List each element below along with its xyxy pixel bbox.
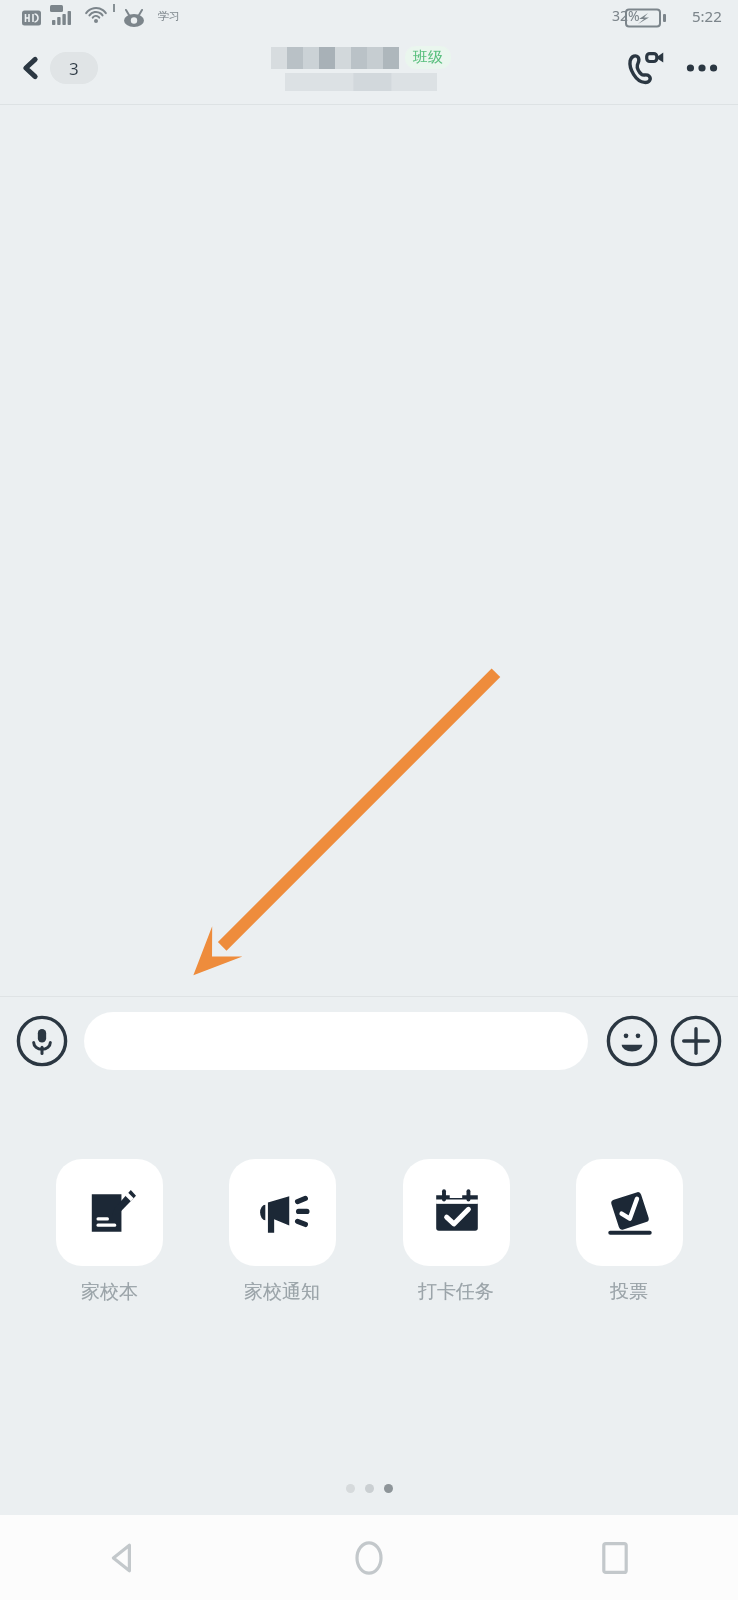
- staticText: 打卡任务: [418, 1280, 494, 1304]
- staticText: 32%: [612, 6, 640, 25]
- button[interactable]: Back: [0, 1515, 246, 1600]
- button[interactable]: 投票: [549, 1157, 709, 1306]
- staticText: 班级: [413, 48, 443, 67]
- button[interactable]: 家校通知: [202, 1157, 362, 1306]
- staticText: 3: [69, 57, 79, 80]
- staticText: 家校本: [81, 1280, 138, 1304]
- button[interactable]: Home: [246, 1515, 492, 1600]
- button[interactable]: 打卡任务: [376, 1157, 536, 1306]
- staticText: 5:22: [692, 6, 722, 26]
- button[interactable]: Emoji: [604, 1013, 660, 1069]
- button[interactable]: Back, 3 unread: [12, 48, 104, 88]
- button[interactable]: Message input: [84, 1012, 588, 1070]
- button[interactable]: More: [668, 1013, 724, 1069]
- button[interactable]: Voice message: [14, 1013, 70, 1069]
- staticText: 家校通知: [244, 1280, 320, 1304]
- button[interactable]: More options: [674, 40, 730, 96]
- staticText: 投票: [610, 1280, 648, 1304]
- button[interactable]: 家校本: [29, 1157, 189, 1306]
- staticText: 学习: [158, 9, 180, 23]
- button[interactable]: Video call: [618, 40, 674, 96]
- button[interactable]: Recents: [492, 1515, 738, 1600]
